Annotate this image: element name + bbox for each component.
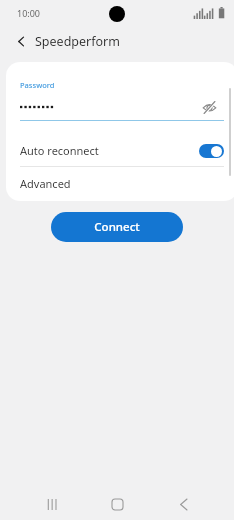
button[interactable]: Back: [8, 28, 34, 54]
staticText: Advanced: [20, 176, 71, 191]
button[interactable]: Auto reconnect toggle: [199, 144, 224, 158]
button[interactable]: Password: [6, 62, 234, 125]
staticText: Password: [20, 80, 55, 90]
staticText: Speedperform: [35, 33, 120, 50]
staticText: Connect: [94, 219, 140, 235]
staticText: 10:00: [17, 7, 41, 19]
button[interactable]: Home: [104, 491, 130, 517]
button[interactable]: Connect: [51, 212, 183, 242]
button[interactable]: Recent apps: [39, 491, 65, 517]
button[interactable]: Show password: [196, 94, 222, 120]
button[interactable]: Auto reconnect: [6, 135, 234, 166]
button[interactable]: Advanced: [6, 167, 234, 199]
staticText: Auto reconnect: [20, 143, 99, 158]
button[interactable]: Back: [170, 491, 196, 517]
